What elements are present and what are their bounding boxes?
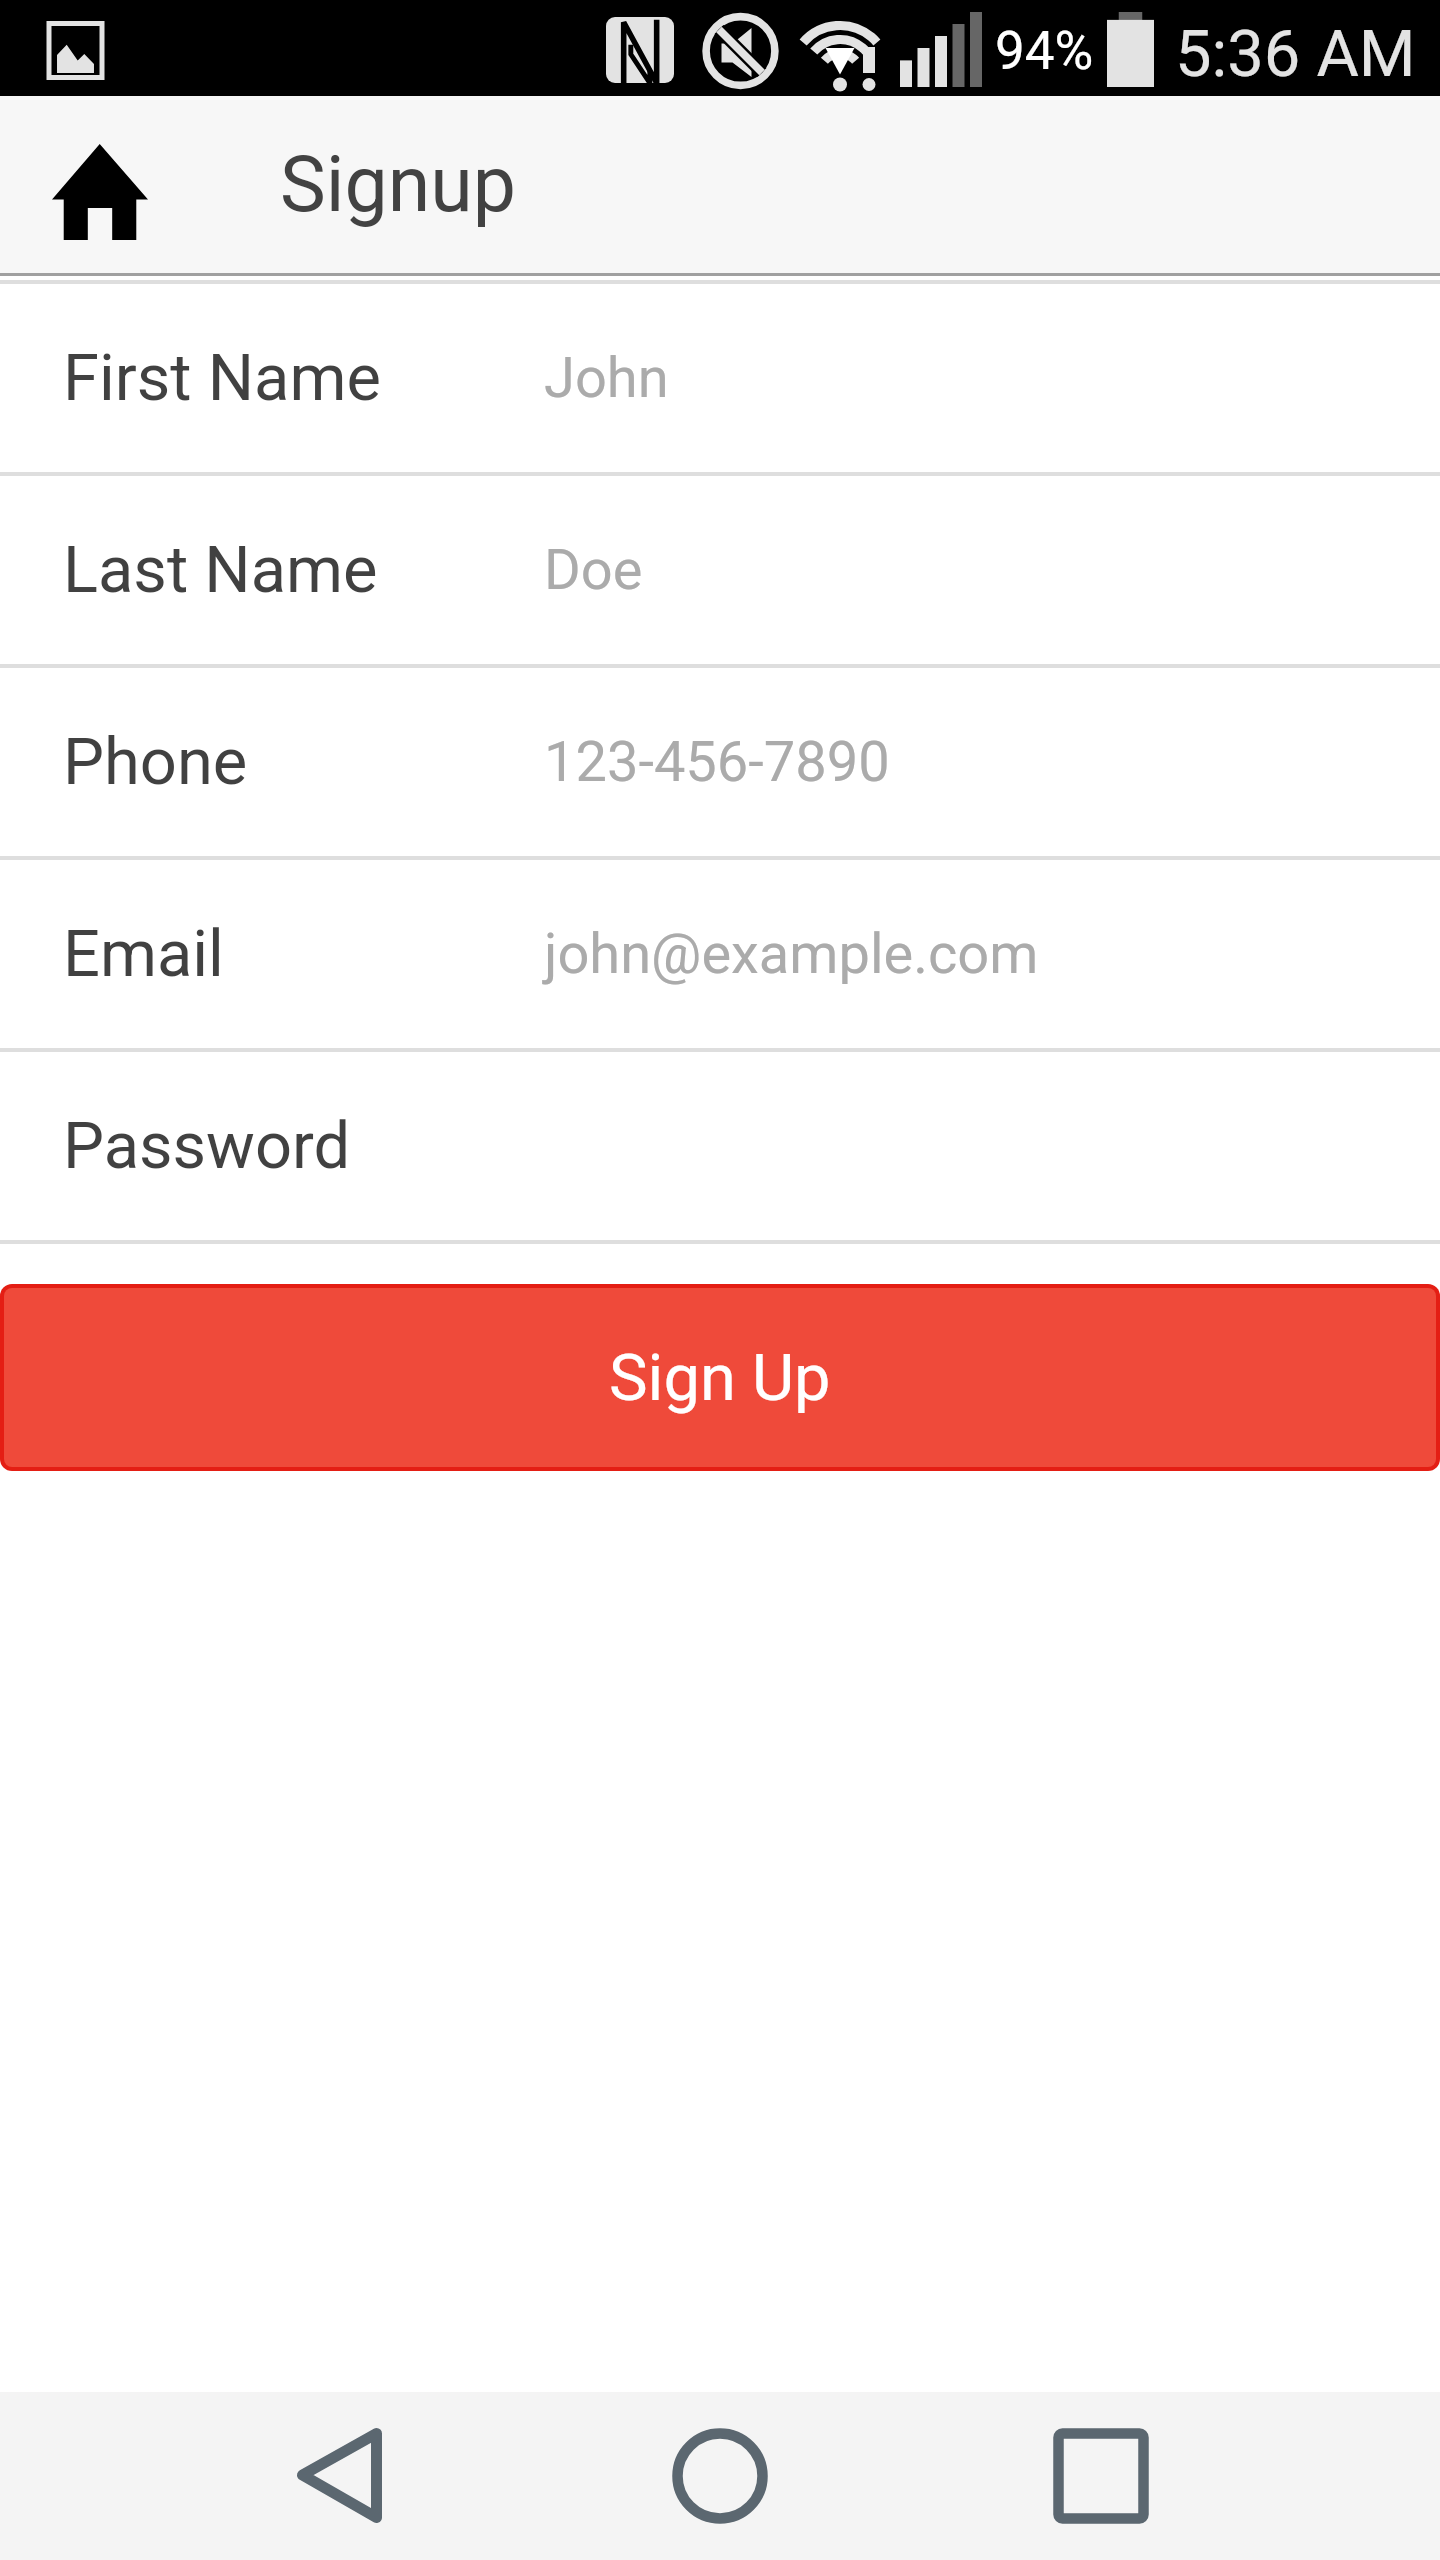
staticText: 5:36 AM xyxy=(1175,16,1416,92)
staticText: 123-456-7890 xyxy=(544,729,890,795)
staticText: Doe xyxy=(544,537,643,603)
button[interactable]: Phone xyxy=(0,668,1440,856)
staticText: First Name xyxy=(63,340,544,416)
staticText: Password xyxy=(63,1108,544,1184)
button[interactable]: Recents xyxy=(1053,2428,1149,2524)
button[interactable]: Back xyxy=(291,2422,387,2518)
staticText: Sign Up xyxy=(609,1340,831,1416)
staticText: Last Name xyxy=(63,532,544,608)
button[interactable]: Sign Up xyxy=(4,1288,1436,1467)
button[interactable]: Email xyxy=(0,860,1440,1048)
staticText: Email xyxy=(63,916,544,992)
button[interactable]: Password xyxy=(0,1052,1440,1240)
staticText: Phone xyxy=(63,724,544,800)
button[interactable]: Home xyxy=(672,2428,768,2524)
staticText: john@example.com xyxy=(544,921,1039,987)
staticText: Signup xyxy=(280,140,516,230)
staticText: John xyxy=(544,345,669,411)
button[interactable]: First Name xyxy=(0,284,1440,472)
button[interactable]: Home xyxy=(52,144,148,240)
button[interactable]: Last Name xyxy=(0,476,1440,664)
staticText: 94% xyxy=(995,20,1094,82)
